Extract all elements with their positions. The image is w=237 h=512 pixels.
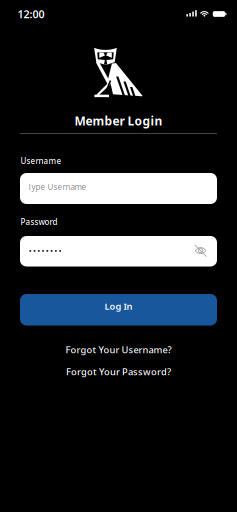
- button[interactable]: [190, 240, 212, 262]
- staticText: Forgot Your Username?: [65, 343, 171, 356]
- staticText: 12:00: [17, 7, 44, 21]
- staticText: Username: [20, 155, 61, 166]
- staticText: Forgot Your Password?: [66, 365, 171, 378]
- button[interactable]: [20, 236, 217, 266]
- staticText: Password: [20, 216, 57, 227]
- staticText: Type Username: [27, 182, 86, 192]
- button[interactable]: Type Username: [20, 173, 217, 204]
- staticText: Member Login: [74, 113, 162, 129]
- button[interactable]: Forgot Your Username?: [0, 343, 237, 356]
- button[interactable]: Forgot Your Password?: [0, 365, 237, 378]
- staticText: Log In: [104, 300, 132, 312]
- button[interactable]: Log In: [20, 294, 217, 325]
